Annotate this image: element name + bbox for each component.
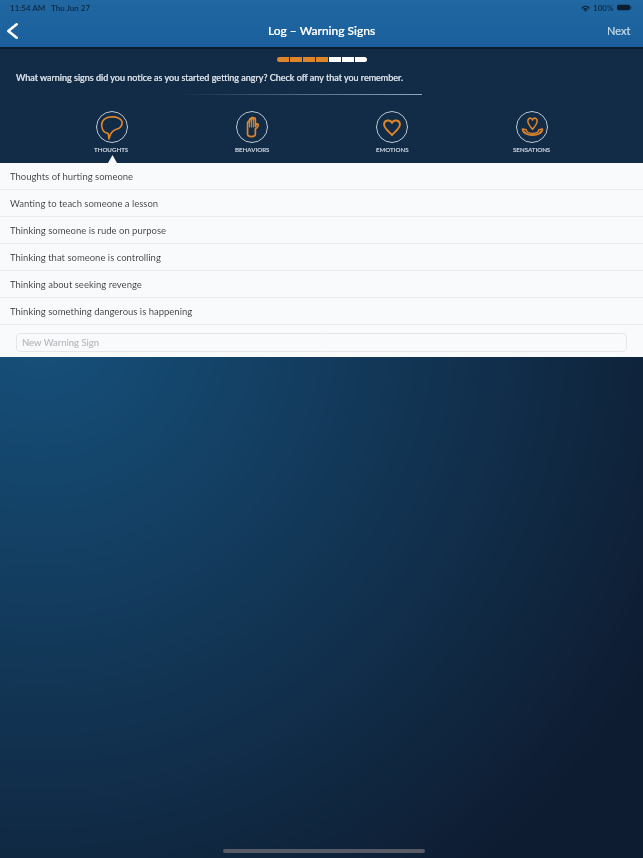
staticText: 11:54 AM (10, 3, 46, 13)
staticText: Thinking something dangerous is happenin… (10, 306, 193, 317)
staticText: New Warning Sign (22, 337, 100, 348)
staticText: Thinking that someone is controlling (10, 252, 161, 263)
staticText: Next (607, 24, 631, 37)
staticText: Wanting to teach someone a lesson (10, 198, 159, 209)
button[interactable]: Next (594, 15, 643, 47)
staticText: What warning signs did you notice as you… (16, 72, 404, 83)
button[interactable]: Wanting to teach someone a lesson (0, 190, 643, 217)
button[interactable]: New Warning Sign (16, 333, 627, 352)
button[interactable]: EMOTIONS (322, 111, 462, 153)
staticText: 100% (593, 3, 614, 13)
staticText: THOUGHTS (94, 146, 129, 153)
staticText: Thinking about seeking revenge (10, 279, 142, 290)
staticText: Thu Jun 27 (51, 3, 91, 13)
button[interactable]: Thoughts of hurting someone (0, 163, 643, 190)
staticText: BEHAVIORS (235, 146, 270, 153)
staticText: SENSATIONS (513, 146, 551, 153)
button[interactable]: Thinking someone is rude on purpose (0, 217, 643, 244)
button[interactable]: THOUGHTS (41, 111, 182, 153)
button[interactable]: Thinking that someone is controlling (0, 244, 643, 271)
button[interactable]: Thinking about seeking revenge (0, 271, 643, 298)
staticText: Thoughts of hurting someone (10, 171, 134, 182)
button[interactable]: Back (0, 15, 25, 47)
button[interactable]: SENSATIONS (462, 111, 602, 153)
button[interactable]: Thinking something dangerous is happenin… (0, 298, 643, 325)
staticText: Log – Warning Signs (268, 23, 376, 37)
staticText: EMOTIONS (376, 146, 409, 153)
button[interactable]: BEHAVIORS (182, 111, 322, 153)
staticText: Thinking someone is rude on purpose (10, 225, 167, 236)
